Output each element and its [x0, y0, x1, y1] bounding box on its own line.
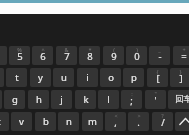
staticText: -: [158, 50, 162, 63]
staticText: ^: [41, 46, 45, 53]
staticText: _: [158, 46, 161, 53]
staticText: %: [17, 46, 22, 53]
staticText: 6: [40, 50, 46, 63]
staticText: (: [113, 46, 115, 53]
staticText: >: [137, 112, 141, 119]
button[interactable]: c: [0, 112, 9, 131]
staticText: +: [182, 46, 186, 53]
staticText: k: [83, 93, 89, 106]
staticText: ;: [130, 94, 133, 107]
staticText: m: [88, 115, 97, 128]
staticText: [: [156, 72, 160, 85]
button[interactable]: *: [79, 46, 100, 65]
staticText: =: [181, 50, 187, 63]
staticText: n: [66, 115, 72, 128]
button[interactable]: Shift: [175, 112, 189, 131]
button[interactable]: +: [173, 46, 189, 65]
staticText: 8: [87, 50, 93, 63]
button[interactable]: i: [77, 68, 98, 87]
button[interactable]: }: [170, 68, 189, 87]
button[interactable]: u: [53, 68, 74, 87]
button[interactable]: j: [51, 90, 72, 109]
button[interactable]: %: [9, 46, 30, 65]
staticText: h: [36, 93, 42, 106]
staticText: 5: [17, 50, 23, 63]
staticText: j: [60, 93, 63, 106]
button[interactable]: <: [105, 112, 126, 131]
staticText: b: [43, 115, 49, 128]
staticText: ?: [161, 112, 164, 119]
staticText: 0: [134, 50, 140, 63]
staticText: o: [108, 71, 114, 84]
staticText: g: [12, 93, 18, 106]
button[interactable]: p: [123, 68, 144, 87]
button[interactable]: y: [30, 68, 51, 87]
staticText: {: [156, 68, 159, 75]
staticText: v: [19, 115, 24, 128]
button[interactable]: ): [126, 46, 147, 65]
button[interactable]: n: [58, 112, 79, 131]
staticText: ": [154, 90, 157, 97]
staticText: ,: [114, 116, 117, 129]
button[interactable]: b: [35, 112, 56, 131]
staticText: <: [114, 112, 118, 119]
staticText: }: [179, 68, 182, 75]
staticText: c: [0, 115, 1, 128]
staticText: :: [131, 90, 133, 97]
button[interactable]: m: [82, 112, 103, 131]
button[interactable]: &: [56, 46, 77, 65]
button[interactable]: ": [145, 90, 166, 109]
button[interactable]: >: [128, 112, 149, 131]
button[interactable]: ?: [152, 112, 173, 131]
staticText: 7: [64, 50, 70, 63]
staticText: 回车: [175, 94, 189, 105]
staticText: &: [64, 46, 69, 53]
staticText: p: [131, 71, 137, 84]
button[interactable]: (: [103, 46, 124, 65]
button[interactable]: ^: [32, 46, 53, 65]
button[interactable]: :: [121, 90, 142, 109]
staticText: i: [86, 71, 89, 84]
staticText: ]: [179, 72, 183, 85]
staticText: ): [136, 46, 138, 53]
staticText: .: [137, 116, 140, 129]
staticText: t: [15, 71, 19, 84]
button[interactable]: g: [4, 90, 25, 109]
button[interactable]: h: [28, 90, 49, 109]
staticText: *: [88, 46, 92, 53]
button[interactable]: o: [100, 68, 121, 87]
button[interactable]: t: [6, 68, 27, 87]
button[interactable]: v: [11, 112, 32, 131]
staticText: /: [161, 116, 165, 129]
button[interactable]: _: [149, 46, 170, 65]
staticText: ': [154, 94, 157, 107]
button[interactable]: l: [98, 90, 119, 109]
button[interactable]: 回车: [168, 90, 189, 109]
button[interactable]: {: [147, 68, 168, 87]
button[interactable]: f: [0, 90, 2, 109]
staticText: l: [107, 93, 110, 106]
button[interactable]: k: [75, 90, 96, 109]
staticText: y: [38, 71, 43, 84]
staticText: 9: [111, 50, 117, 63]
staticText: u: [61, 71, 67, 84]
